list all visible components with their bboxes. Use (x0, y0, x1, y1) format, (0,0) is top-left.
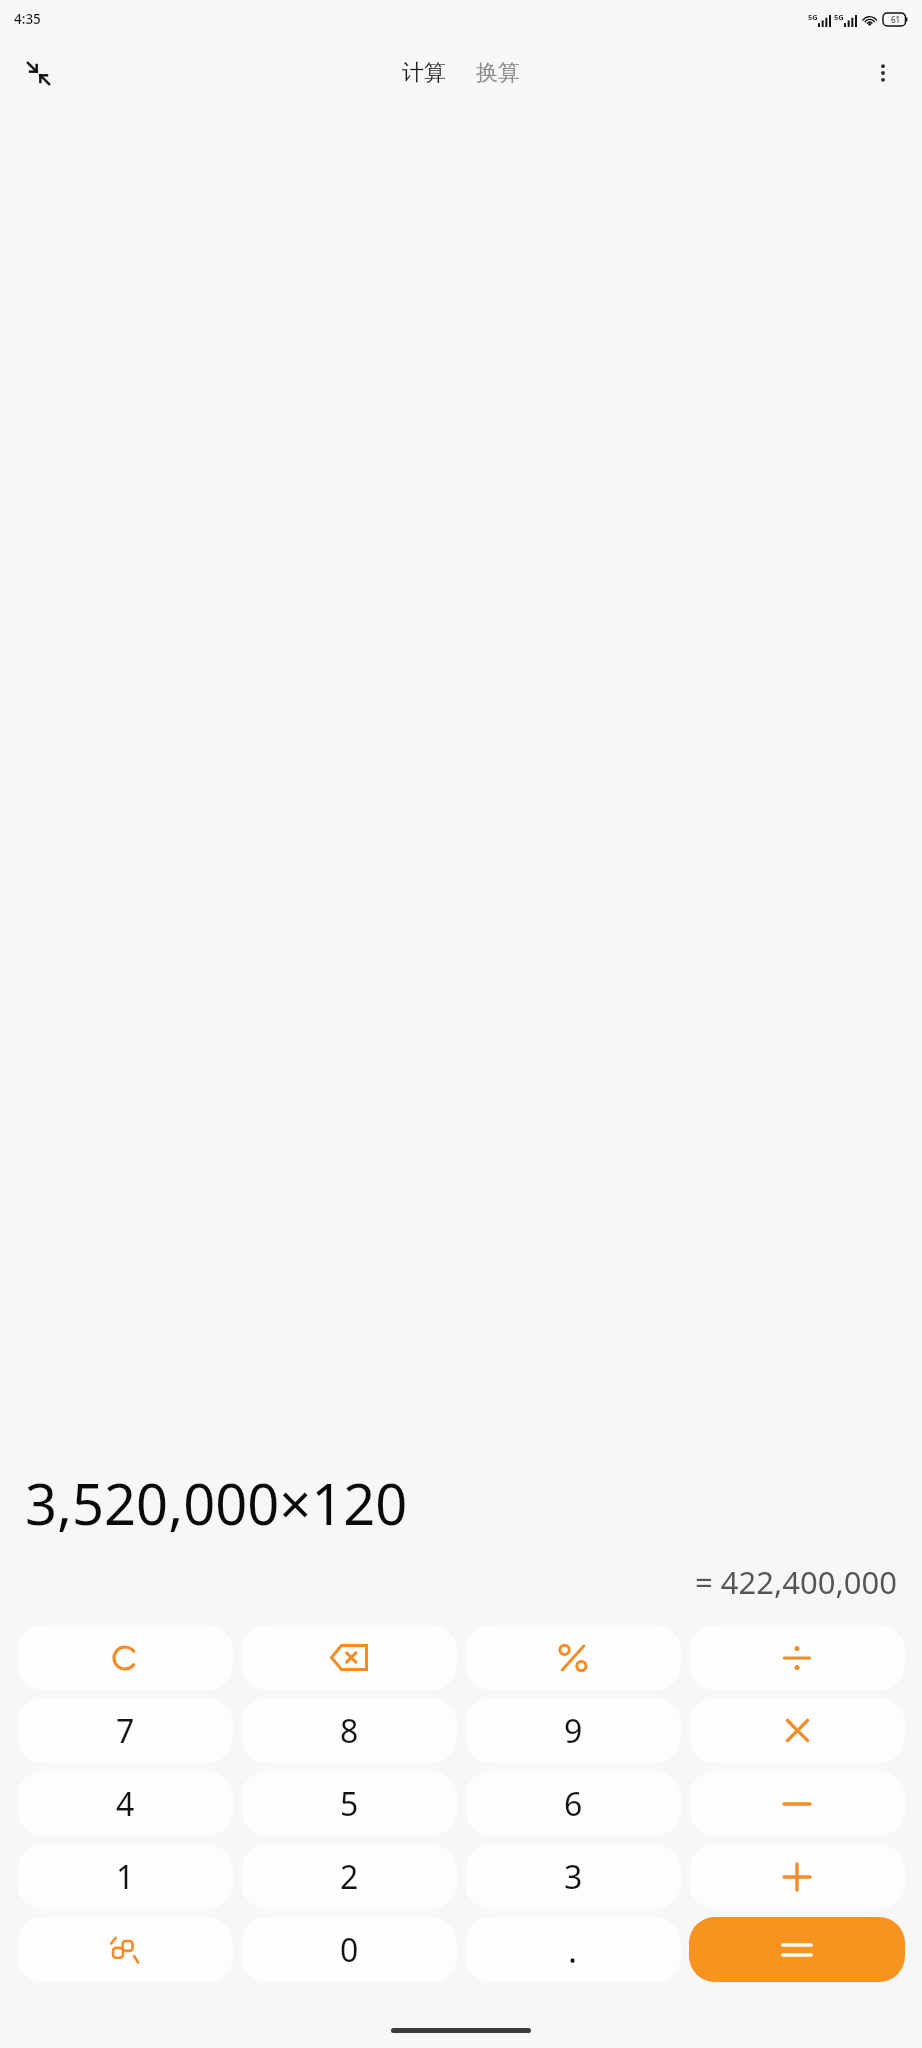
staticText: . (568, 1927, 578, 1973)
button[interactable]: Plus (689, 1844, 905, 1909)
button[interactable]: Backspace (241, 1625, 457, 1690)
button[interactable]: Clear (17, 1625, 233, 1690)
button[interactable]: 0 (241, 1917, 457, 1982)
staticText: 5 (340, 1782, 359, 1826)
button[interactable]: 4 (17, 1771, 233, 1836)
other: Plus (782, 1862, 812, 1892)
button[interactable]: . (465, 1917, 681, 1982)
other: Scientific functions (110, 1935, 140, 1965)
button[interactable]: Scientific functions (17, 1917, 233, 1982)
button[interactable]: Collapse (10, 45, 66, 101)
other: Multiply (784, 1717, 811, 1744)
staticText: 计算 (402, 59, 446, 87)
button[interactable]: 计算 (394, 53, 454, 93)
button[interactable]: Multiply (689, 1698, 905, 1763)
button[interactable]: 2 (241, 1844, 457, 1909)
staticText: 4 (116, 1782, 135, 1826)
staticText: 6 (564, 1782, 583, 1826)
other: Clear (110, 1643, 140, 1673)
staticText: 8 (340, 1709, 359, 1753)
other: Percent (558, 1643, 588, 1673)
staticText: 5G (834, 12, 844, 22)
staticText: 9 (564, 1709, 583, 1753)
button[interactable]: Percent (465, 1625, 681, 1690)
button[interactable]: 8 (241, 1698, 457, 1763)
staticText: = 422,400,000 (25, 1561, 897, 1603)
staticText: 7 (116, 1709, 135, 1753)
staticText: 61 (891, 14, 901, 25)
button[interactable]: 9 (465, 1698, 681, 1763)
staticText: 3 (564, 1855, 583, 1899)
button[interactable]: 5 (241, 1771, 457, 1836)
other: Minus (782, 1801, 812, 1807)
staticText: 5G (808, 12, 818, 22)
button[interactable]: 1 (17, 1844, 233, 1909)
button[interactable]: 3 (465, 1844, 681, 1909)
button[interactable]: 6 (465, 1771, 681, 1836)
button[interactable]: 7 (17, 1698, 233, 1763)
staticText: 2 (340, 1855, 359, 1899)
staticText: 1 (116, 1855, 135, 1899)
staticText: 换算 (476, 59, 520, 87)
other: Divide (782, 1643, 812, 1673)
button[interactable]: Minus (689, 1771, 905, 1836)
staticText: 3,520,000×120 (25, 1465, 897, 1541)
other: Backspace (330, 1644, 368, 1671)
button[interactable]: More options (856, 46, 910, 100)
staticText: 4:35 (14, 10, 41, 28)
button[interactable]: 换算 (468, 53, 528, 93)
button[interactable]: Equals (689, 1917, 905, 1982)
button[interactable]: Divide (689, 1625, 905, 1690)
staticText: 0 (340, 1928, 359, 1972)
